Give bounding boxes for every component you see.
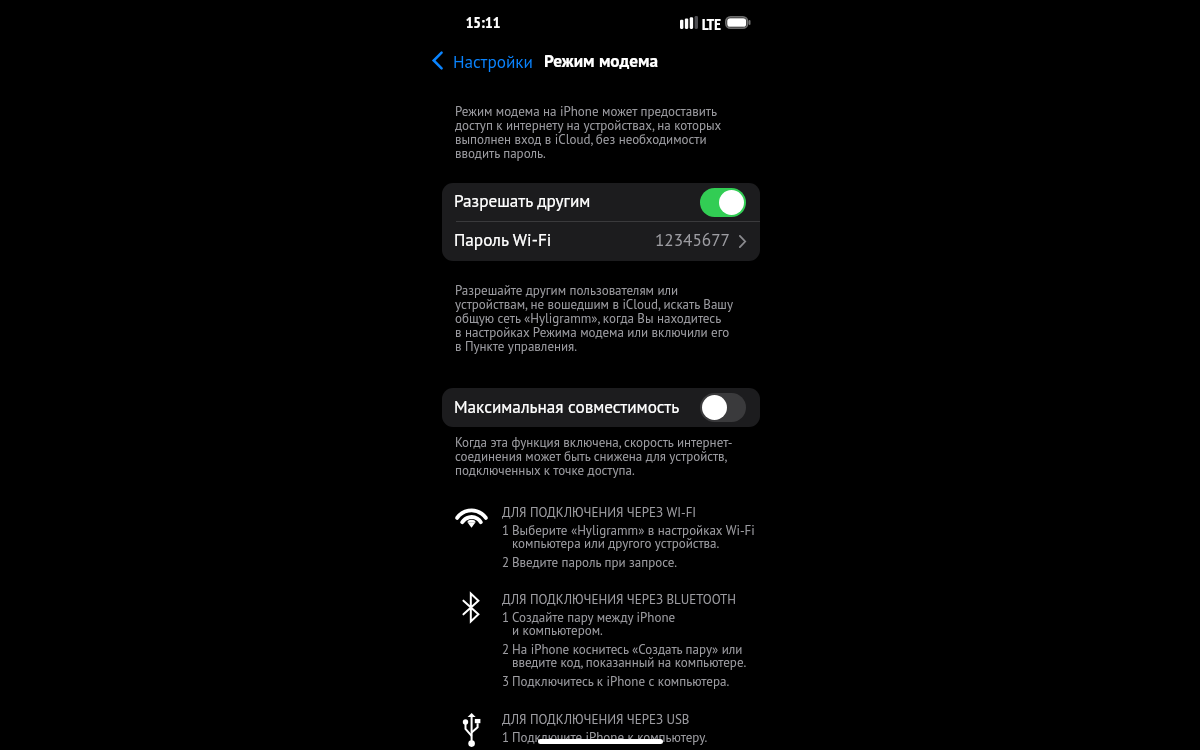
staticText: 15:11 <box>458 12 508 33</box>
staticText: Пароль Wi-Fi <box>454 228 552 250</box>
staticText: 2 <box>502 554 510 571</box>
staticText: Введите пароль при запросе. <box>512 554 678 571</box>
staticText: Настройки <box>453 50 533 72</box>
staticText: Режим модема <box>544 49 659 71</box>
staticText: На iPhone коснитесь «Создать пару» или в… <box>512 641 747 670</box>
other: Bluetooth <box>460 592 483 623</box>
staticText: 3 <box>502 673 510 690</box>
staticText: Когда эта функция включена, скорость инт… <box>455 434 733 479</box>
staticText: Выберите «Hyligramm» в настройках Wi-Fi … <box>512 522 755 551</box>
button[interactable]: Включено <box>700 188 746 217</box>
staticText: Разрешать другим <box>454 189 591 211</box>
staticText: Режим модема на iPhone может предоставит… <box>455 103 722 162</box>
staticText: 1 <box>502 729 510 746</box>
button[interactable]: Разрешать другим <box>442 183 760 221</box>
other: Wi-Fi <box>458 506 485 528</box>
staticText: ДЛЯ ПОДКЛЮЧЕНИЯ ЧЕРЕЗ WI-FI <box>502 504 697 521</box>
button[interactable]: Максимальная совместимость <box>442 388 760 427</box>
staticText: 1 <box>502 609 510 626</box>
button[interactable]: Выключено <box>700 393 746 422</box>
staticText: Подключитесь к iPhone с компьютера. <box>512 673 730 690</box>
staticText: ДЛЯ ПОДКЛЮЧЕНИЯ ЧЕРЕЗ USB <box>502 711 690 728</box>
staticText: 12345677 <box>655 228 730 250</box>
staticText: 2 <box>502 641 510 658</box>
staticText: Разрешайте другим пользователям или устр… <box>455 282 733 355</box>
other: USB <box>462 713 482 747</box>
button[interactable]: Назад, Настройки <box>432 49 533 71</box>
staticText: LTE <box>702 14 721 34</box>
button[interactable]: Пароль Wi-Fi <box>442 222 760 261</box>
staticText: Создайте пару между iPhone и компьютером… <box>512 609 676 638</box>
staticText: Максимальная совместимость <box>454 395 680 417</box>
staticText: Подключите iPhone к компьютеру. <box>512 729 708 746</box>
staticText: 1 <box>502 522 510 539</box>
staticText: ДЛЯ ПОДКЛЮЧЕНИЯ ЧЕРЕЗ BLUETOOTH <box>502 591 736 608</box>
